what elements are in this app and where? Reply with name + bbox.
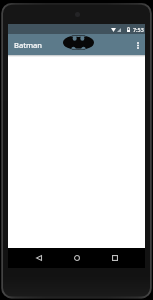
staticText: 7:53 [133, 26, 144, 33]
button[interactable]: More options [131, 34, 144, 55]
button[interactable]: Recent apps [108, 251, 122, 265]
staticText: Batman [14, 40, 42, 50]
button[interactable]: Back [32, 251, 46, 265]
button[interactable]: Home [70, 251, 84, 265]
